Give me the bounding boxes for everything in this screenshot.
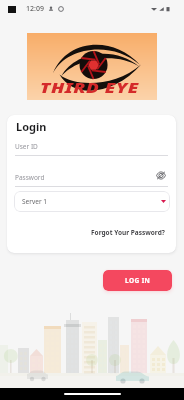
staticText: 12:09 bbox=[26, 4, 44, 14]
staticText: User ID bbox=[15, 142, 38, 151]
staticText: Login bbox=[16, 119, 47, 134]
staticText: THIRD EYE bbox=[40, 78, 139, 97]
button[interactable]: Password bbox=[15, 173, 168, 187]
staticText: Password bbox=[15, 173, 45, 182]
other: Toggle password visibility bbox=[156, 171, 166, 180]
button[interactable]: User ID bbox=[15, 142, 168, 156]
staticText: Server 1 bbox=[22, 197, 47, 206]
button[interactable]: Server 1 bbox=[14, 191, 170, 212]
staticText: LOG IN bbox=[125, 276, 151, 285]
button[interactable]: Forgot Your Password? bbox=[91, 228, 165, 237]
button[interactable]: LOG IN bbox=[103, 270, 172, 291]
